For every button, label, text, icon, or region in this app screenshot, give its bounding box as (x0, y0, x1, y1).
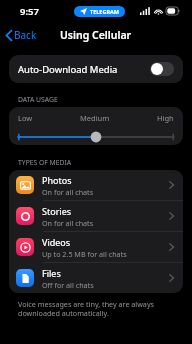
staticText: On for all chats (42, 218, 94, 228)
staticText: Videos (42, 236, 71, 248)
staticText: Voice messages are tiny, they are always… (18, 299, 155, 319)
staticText: Auto-Download Media (18, 63, 118, 76)
button[interactable]: Auto-Download Media (9, 55, 183, 83)
button[interactable] (18, 130, 174, 144)
staticText: Using Cellular (60, 28, 132, 42)
staticText: 9:57 (20, 5, 39, 18)
staticText: Photos (42, 174, 72, 186)
button[interactable]: Back (0, 24, 45, 46)
staticText: High (157, 113, 174, 123)
staticText: Back (14, 28, 37, 42)
button[interactable]: Files (9, 263, 183, 293)
button[interactable]: Photos (9, 170, 183, 200)
staticText: Medium (80, 113, 110, 123)
button[interactable]: Stories (9, 201, 183, 231)
staticText: TELEGRAM (90, 8, 119, 15)
staticText: Files (42, 267, 61, 279)
staticText: DATA USAGE (18, 95, 58, 104)
staticText: Up to 2.5 MB for all chats (42, 249, 127, 259)
staticText: On for all chats (42, 187, 94, 197)
staticText: Off for all chats (42, 280, 94, 290)
staticText: Stories (42, 205, 72, 217)
button[interactable]: Videos (9, 232, 183, 262)
staticText: TYPES OF MEDIA (18, 158, 72, 167)
staticText: Low (18, 113, 33, 123)
